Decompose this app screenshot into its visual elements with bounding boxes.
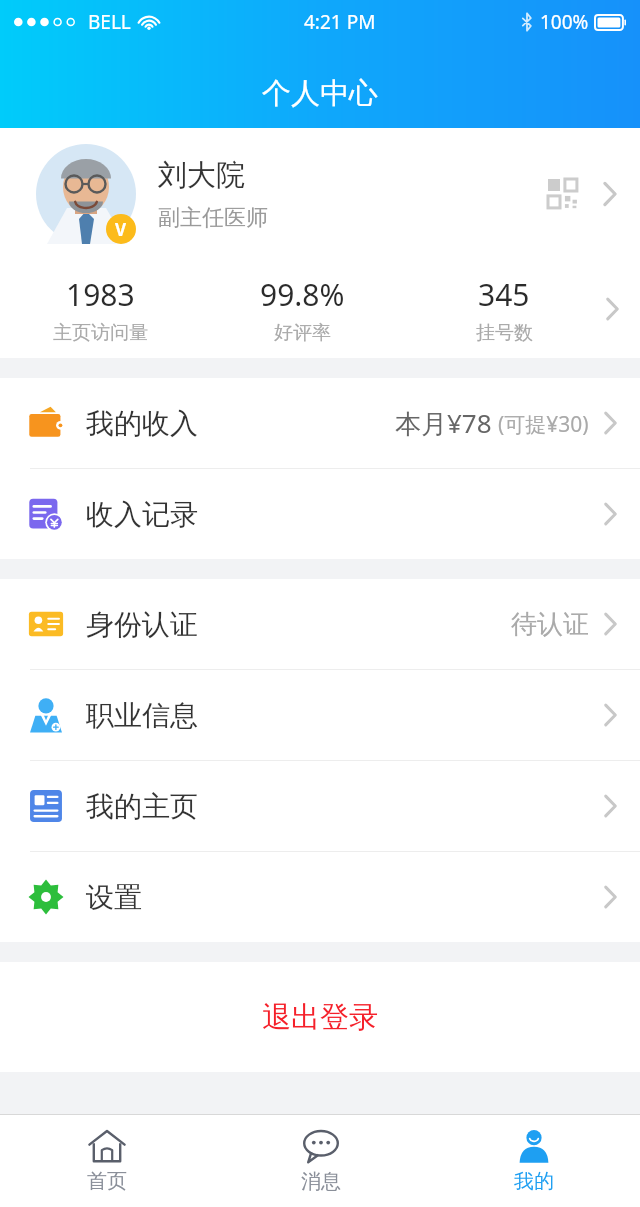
staticText: 收入记录 (86, 497, 198, 532)
staticText: 主页访问量 (53, 321, 148, 345)
staticText: (可提¥30) (498, 410, 589, 439)
button[interactable]: 1983 (0, 260, 640, 358)
staticText: 刘大院 (158, 157, 245, 194)
button[interactable]: 退出登录 (0, 962, 640, 1072)
staticText: 1983 (66, 274, 135, 315)
staticText: 4:21 PM (304, 9, 376, 35)
staticText: 退出登录 (262, 999, 378, 1036)
staticText: 好评率 (274, 321, 331, 345)
staticText: 待认证 (511, 608, 589, 641)
button[interactable]: V (0, 128, 640, 260)
staticText: 我的收入 (86, 406, 198, 441)
staticText: 我的主页 (86, 789, 198, 824)
staticText: 挂号数 (476, 321, 533, 345)
button[interactable]: 收入记录 (0, 469, 640, 559)
button[interactable]: 我的收入 (0, 378, 640, 468)
staticText: 个人中心 (262, 75, 378, 112)
staticText: 首页 (87, 1169, 127, 1194)
staticText: 99.8% (260, 274, 345, 315)
staticText: 副主任医师 (158, 204, 268, 232)
staticText: 设置 (86, 880, 142, 915)
staticText: 我的 (514, 1169, 554, 1194)
staticText: 345 (478, 274, 530, 315)
button[interactable]: 我的 (427, 1115, 640, 1207)
staticText: BELL (88, 9, 131, 35)
button[interactable]: 设置 (0, 852, 640, 942)
staticText: 职业信息 (86, 698, 198, 733)
button[interactable]: 消息 (214, 1115, 427, 1207)
button[interactable]: 我的主页 (0, 761, 640, 851)
staticText: 100% (540, 9, 589, 35)
button[interactable]: 首页 (0, 1115, 214, 1207)
staticText: V (115, 218, 127, 241)
staticText: 身份认证 (86, 607, 198, 642)
button[interactable]: 职业信息 (0, 670, 640, 760)
staticText: 消息 (301, 1169, 341, 1194)
button[interactable]: 身份认证 (0, 579, 640, 669)
staticText: 本月¥78 (395, 405, 492, 441)
other: QR code (548, 179, 578, 209)
